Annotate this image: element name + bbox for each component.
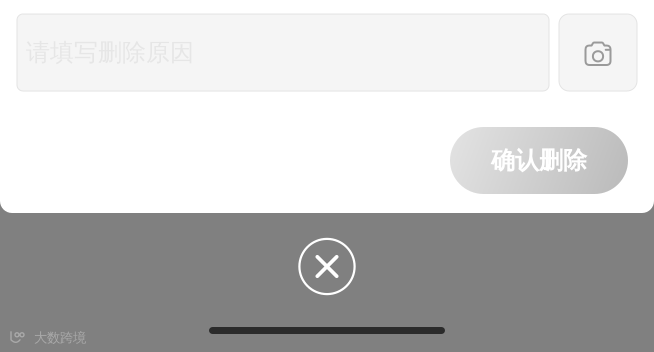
button[interactable]: Close (298, 238, 355, 295)
staticText: 请填写删除原因 (26, 38, 194, 67)
button[interactable]: 确认删除 (450, 127, 628, 194)
button[interactable]: Add photo (559, 14, 637, 91)
staticText: 大数跨境 (34, 330, 86, 346)
staticText: 确认删除 (491, 146, 587, 175)
